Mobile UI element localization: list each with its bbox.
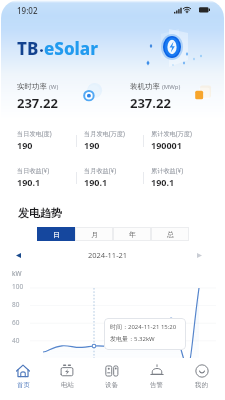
staticText: 装机功率: [130, 82, 160, 91]
staticText: 80: [12, 300, 20, 309]
staticText: 首页: [17, 381, 30, 389]
staticText: TB: [17, 37, 39, 60]
button[interactable]: 年: [113, 227, 151, 241]
staticText: 190001: [151, 139, 182, 151]
staticText: 60: [12, 318, 20, 327]
button[interactable]: Previous day: [12, 249, 24, 261]
staticText: 日: [53, 230, 60, 239]
staticText: 发电趋势: [18, 206, 62, 220]
staticText: (W): [49, 83, 59, 91]
staticText: 累计收益(¥): [151, 166, 184, 174]
staticText: 发电量：5.32kW: [110, 335, 155, 343]
staticText: 设备: [105, 381, 118, 389]
button[interactable]: 设备: [89, 358, 134, 400]
button[interactable]: 月: [75, 227, 113, 241]
staticText: 当月发电(万度): [84, 129, 125, 137]
staticText: 190.1: [151, 176, 175, 188]
staticText: 月: [91, 230, 98, 239]
staticText: eSolar: [44, 37, 98, 60]
button[interactable]: 告警: [134, 358, 179, 400]
staticText: 237.22: [130, 94, 171, 112]
staticText: 累计发电(万度): [151, 129, 192, 137]
staticText: kW: [12, 269, 22, 278]
staticText: 总: [167, 230, 174, 239]
staticText: 100: [12, 282, 24, 291]
staticText: 190.1: [84, 176, 108, 188]
staticText: 告警: [150, 381, 163, 389]
staticText: 2024-11-21: [88, 250, 128, 260]
staticText: 190: [17, 139, 33, 151]
button[interactable]: 总: [151, 227, 189, 241]
button[interactable]: Next day: [193, 249, 205, 261]
staticText: 时间：2024-11-21 15:20: [110, 323, 177, 331]
staticText: 190: [84, 139, 100, 151]
staticText: 237.22: [17, 94, 58, 112]
staticText: 实时功率: [17, 82, 47, 91]
button[interactable]: 我的: [179, 358, 224, 400]
staticText: 40: [12, 336, 20, 345]
button[interactable]: 日: [37, 227, 75, 241]
staticText: 我的: [195, 381, 208, 389]
staticText: 当月收益(¥): [84, 166, 117, 174]
button[interactable]: 电站: [45, 358, 89, 400]
staticText: 电站: [61, 381, 74, 389]
staticText: 年: [129, 230, 136, 239]
staticText: 当日发电(度): [17, 129, 52, 137]
staticText: 19:02: [17, 5, 38, 16]
staticText: 当日收益(¥): [17, 166, 50, 174]
staticText: (MWp): [162, 83, 181, 91]
staticText: 190.1: [17, 176, 41, 188]
button[interactable]: 首页: [1, 358, 45, 400]
